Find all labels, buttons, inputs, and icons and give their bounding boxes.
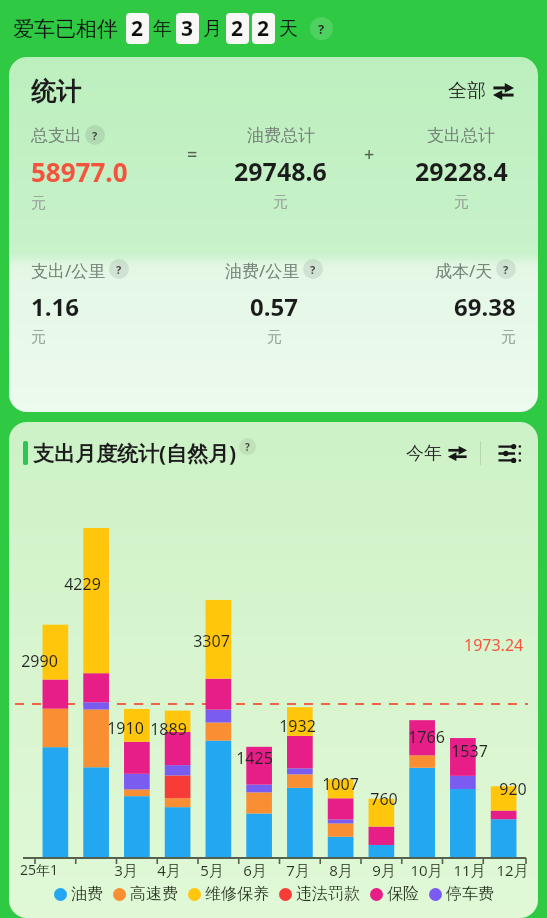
button[interactable]: 图表设置	[494, 438, 524, 468]
staticText: 6月	[243, 860, 267, 880]
staticText: ?	[318, 20, 325, 38]
staticText: 8月	[329, 860, 353, 880]
staticText: 25年1月	[17, 860, 61, 879]
staticText: 元	[501, 328, 516, 347]
staticText: 元	[267, 328, 282, 347]
staticText: ?	[310, 262, 316, 277]
staticText: 元	[273, 193, 288, 212]
staticText: 违法罚款	[296, 884, 360, 904]
staticText: +	[364, 142, 375, 167]
staticText: 元	[31, 194, 46, 213]
staticText: 29748.6	[234, 154, 327, 188]
staticText: 今年	[406, 442, 442, 465]
staticText: 760	[370, 788, 398, 810]
staticText: 10月	[410, 860, 443, 880]
staticText: 支出月度统计(自然月)	[33, 439, 237, 468]
staticText: 成本/天	[435, 259, 493, 282]
staticText: 元	[454, 193, 469, 212]
staticText: 29228.4	[415, 154, 508, 188]
button[interactable]: 油费/公里	[186, 259, 362, 412]
button[interactable]: 今年	[404, 440, 469, 467]
staticText: 1007	[322, 773, 359, 795]
button[interactable]: 成本/天	[362, 259, 538, 412]
staticText: 5月	[200, 860, 224, 880]
staticText: 58977.0	[31, 154, 128, 189]
staticText: 爱车已相伴	[13, 16, 118, 42]
staticText: 2	[231, 14, 244, 43]
staticText: 1.16	[31, 290, 79, 323]
staticText: ?	[503, 262, 509, 277]
staticText: 总支出	[31, 125, 82, 146]
button[interactable]: 违法罚款	[279, 884, 360, 904]
staticText: 9月	[372, 860, 396, 880]
staticText: 高速费	[130, 884, 178, 904]
staticText: 1973.24	[464, 634, 524, 656]
staticText: 元	[31, 328, 46, 347]
staticText: 1425	[236, 747, 273, 769]
staticText: 69.38	[454, 290, 516, 323]
button[interactable]: 支出/公里	[9, 259, 186, 412]
staticText: 11月	[453, 860, 486, 880]
staticText: 油费/公里	[225, 259, 300, 282]
staticText: 2990	[21, 650, 58, 672]
staticText: ?	[245, 440, 250, 454]
button[interactable]: 油费总计	[207, 125, 354, 243]
staticText: 2	[257, 14, 270, 43]
button[interactable]: 停车费	[429, 884, 494, 904]
button[interactable]: 总支出	[9, 125, 177, 243]
other: 筛选全部	[493, 81, 514, 102]
staticText: 1889	[150, 718, 187, 740]
staticText: 油费	[71, 884, 103, 904]
staticText: 2	[131, 14, 144, 43]
staticText: 12月	[496, 860, 529, 880]
staticText: 3月	[114, 860, 138, 880]
staticText: 1537	[451, 740, 488, 762]
staticText: 维修保养	[205, 884, 269, 904]
button[interactable]: 油费	[54, 884, 103, 904]
button[interactable]: 保险	[370, 884, 419, 904]
staticText: 支出/公里	[31, 259, 106, 282]
staticText: ?	[116, 262, 122, 277]
button[interactable]: 高速费	[113, 884, 178, 904]
staticText: 920	[499, 778, 527, 800]
staticText: 全部	[448, 79, 486, 103]
staticText: 月	[203, 17, 222, 41]
button[interactable]: 支出总计	[384, 125, 538, 243]
staticText: 天	[279, 17, 298, 41]
staticText: 支出总计	[427, 125, 495, 146]
staticText: 1932	[279, 715, 316, 737]
button[interactable]: 维修保养	[188, 884, 269, 904]
button[interactable]: 全部	[444, 75, 518, 107]
staticText: 停车费	[446, 884, 494, 904]
button[interactable]: 帮助	[310, 17, 333, 40]
staticText: 年	[153, 17, 172, 41]
staticText: 4月	[157, 860, 181, 880]
staticText: 3307	[193, 630, 230, 652]
staticText: 1766	[408, 726, 445, 748]
staticText: 油费总计	[247, 125, 315, 146]
staticText: 7月	[286, 860, 310, 880]
staticText: 1910	[107, 717, 144, 739]
staticText: 统计	[31, 76, 81, 107]
button[interactable]: ?	[239, 438, 256, 455]
staticText: 3	[181, 14, 194, 43]
staticText: 0.57	[250, 290, 298, 323]
staticText: =	[187, 142, 198, 167]
staticText: 保险	[387, 884, 419, 904]
other: 切换年份	[448, 444, 467, 463]
staticText: 4229	[64, 573, 101, 595]
staticText: ?	[92, 128, 98, 143]
